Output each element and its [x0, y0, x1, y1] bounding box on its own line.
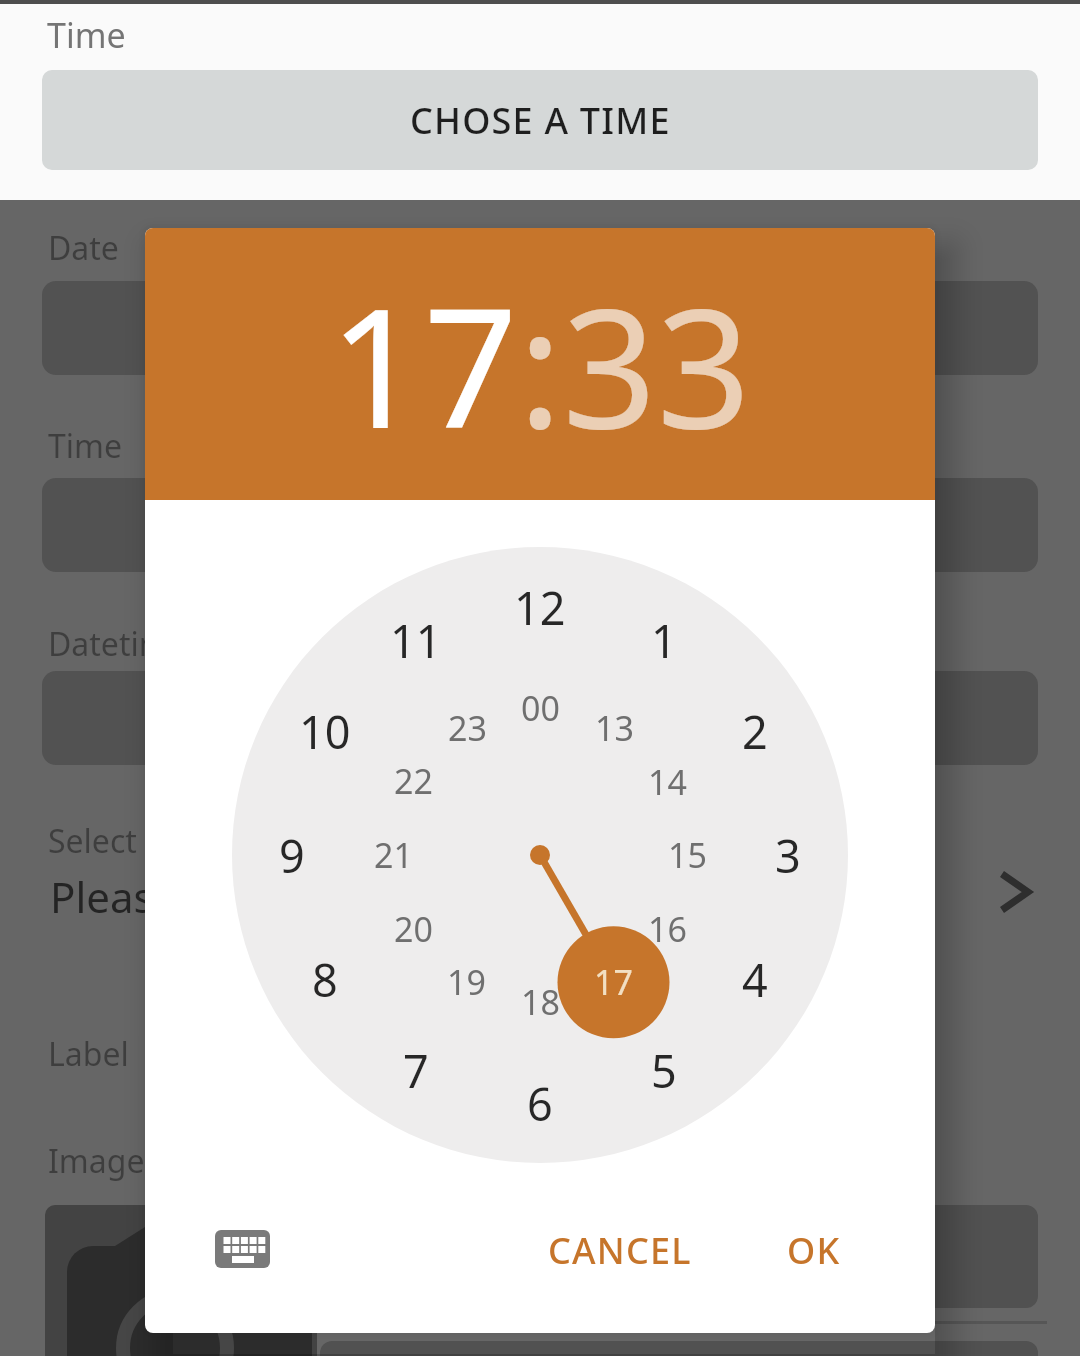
staticText: 7 [403, 1040, 429, 1101]
staticText: Label [48, 1032, 129, 1076]
staticText: Please select something [50, 868, 526, 925]
staticText: 22 [394, 758, 433, 804]
staticText: 16 [648, 906, 687, 952]
staticText: 1 [651, 610, 677, 671]
staticText: 17 [329, 252, 518, 477]
staticText: :33 [518, 252, 751, 477]
staticText: CHOSE A TIME [410, 96, 671, 145]
staticText: 17 [594, 959, 633, 1005]
staticText: 8 [312, 949, 338, 1010]
staticText: Select something [48, 819, 307, 863]
staticText: 15 [668, 832, 707, 878]
staticText: CANCEL [548, 1226, 692, 1275]
staticText: OK [787, 1226, 841, 1275]
staticText: 2 [742, 701, 768, 762]
button[interactable]: CANCEL [530, 1215, 710, 1285]
staticText: 9 [279, 825, 305, 886]
staticText: Time [48, 424, 123, 468]
staticText: Time [47, 12, 126, 58]
staticText: 20 [394, 906, 433, 952]
staticText: 11 [390, 610, 442, 671]
staticText: 6 [527, 1073, 553, 1134]
staticText: 12 [514, 577, 566, 638]
button[interactable] [215, 1230, 270, 1268]
staticText: 00 [521, 685, 560, 731]
staticText: 10 [299, 701, 351, 762]
staticText: 13 [595, 705, 634, 751]
staticText: 23 [448, 705, 487, 751]
staticText: Datetime [48, 622, 187, 666]
button[interactable]: CHOSE A TIME [42, 70, 1038, 170]
staticText: Date [48, 226, 119, 270]
staticText: Image [48, 1139, 145, 1183]
button[interactable]: OK [754, 1215, 874, 1285]
staticText: 14 [648, 759, 687, 805]
staticText: 19 [447, 959, 486, 1005]
staticText: 21 [374, 832, 413, 878]
staticText: 4 [742, 949, 768, 1010]
staticText: 5 [651, 1040, 677, 1101]
staticText: 18 [521, 979, 560, 1025]
staticText: 3 [775, 825, 801, 886]
